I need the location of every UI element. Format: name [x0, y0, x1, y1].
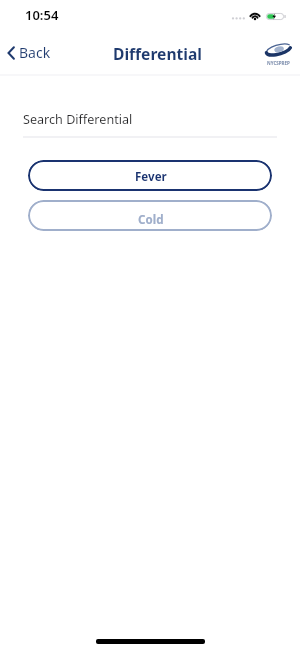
staticText: 10:54: [25, 6, 59, 24]
button[interactable]: Back: [0, 38, 59, 67]
button[interactable]: Search Differential: [0, 111, 300, 138]
staticText: Search Differential: [23, 111, 133, 128]
staticText: NYCSPREP: [267, 60, 290, 66]
button[interactable]: NYCSPREP logo: [265, 42, 291, 66]
staticText: Differential: [113, 43, 202, 64]
button[interactable]: Fever: [28, 160, 272, 191]
staticText: Back: [19, 43, 51, 62]
staticText: Cold: [138, 212, 164, 228]
button[interactable]: Cold: [28, 200, 272, 231]
staticText: Fever: [135, 169, 167, 185]
